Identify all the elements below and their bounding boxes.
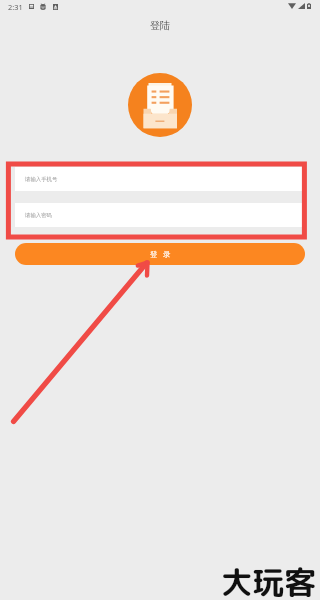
- button[interactable]: 请输入手机号: [15, 167, 305, 191]
- staticText: 请输入密码: [25, 212, 52, 219]
- staticText: 大玩客: [221, 560, 316, 600]
- staticText: 登 录: [150, 249, 171, 259]
- staticText: 请输入手机号: [25, 176, 58, 183]
- button[interactable]: 登 录: [15, 243, 305, 265]
- staticText: 2:31: [8, 2, 23, 12]
- button[interactable]: 请输入密码: [15, 203, 305, 227]
- button[interactable]: Logo: [128, 73, 192, 137]
- staticText: 登陆: [150, 19, 170, 32]
